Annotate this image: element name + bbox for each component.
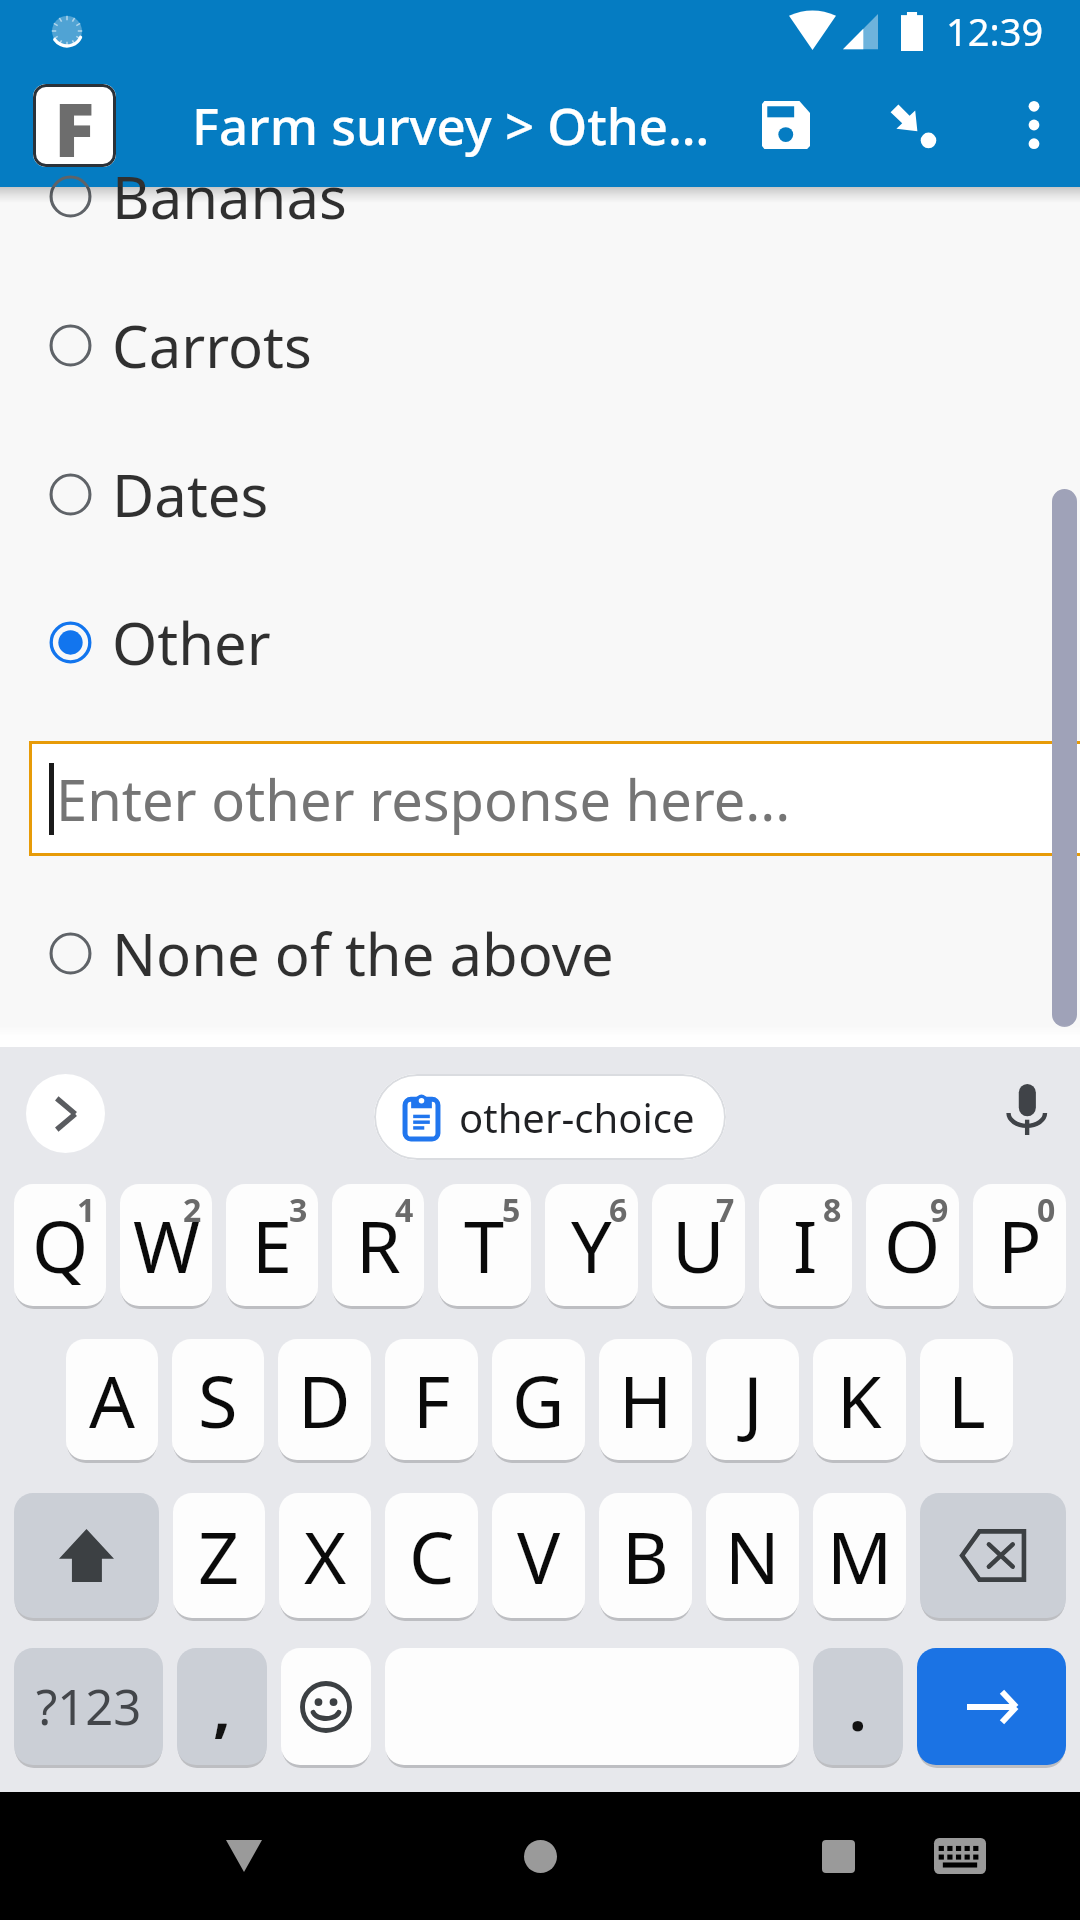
staticText: Carrots <box>112 306 312 385</box>
staticText: 1 <box>77 1188 96 1232</box>
staticText: , <box>213 1665 231 1749</box>
staticText: U <box>672 1196 725 1294</box>
button[interactable]: G <box>492 1339 585 1460</box>
staticText: None of the above <box>112 914 614 993</box>
button[interactable]: B <box>599 1493 692 1618</box>
staticText: H <box>619 1351 673 1449</box>
button[interactable]: Expand toolbar <box>26 1074 105 1153</box>
staticText: Dates <box>112 455 269 534</box>
staticText: O <box>884 1196 941 1294</box>
button[interactable]: Save <box>714 62 858 187</box>
staticText: 2 <box>183 1188 202 1232</box>
staticText: S <box>198 1351 238 1449</box>
button[interactable]: Switch keyboard <box>912 1792 1008 1920</box>
button[interactable]: ?123 <box>14 1648 163 1765</box>
button[interactable]: D <box>278 1339 371 1460</box>
button[interactable]: Z <box>173 1493 265 1618</box>
staticText: 7 <box>716 1188 735 1232</box>
staticText: X <box>304 1507 347 1605</box>
button[interactable]: J <box>706 1339 799 1460</box>
button[interactable]: Recents <box>790 1792 886 1920</box>
staticText: other-choice <box>459 1090 695 1144</box>
button[interactable]: Jump to end <box>858 62 988 187</box>
staticText: B <box>622 1507 669 1605</box>
button[interactable]: S <box>172 1339 264 1460</box>
button[interactable]: Back <box>196 1792 292 1920</box>
staticText: A <box>89 1351 136 1449</box>
staticText: L <box>948 1351 986 1449</box>
staticText: Bananas <box>112 157 347 236</box>
button[interactable]: X <box>279 1493 371 1618</box>
staticText: V <box>517 1507 561 1605</box>
staticText: Z <box>198 1507 240 1605</box>
button[interactable]: V <box>492 1493 585 1618</box>
button[interactable]: . <box>813 1648 903 1765</box>
button[interactable]: A <box>66 1339 158 1460</box>
button[interactable]: H <box>599 1339 692 1460</box>
staticText: W <box>133 1196 200 1294</box>
staticText: E <box>252 1196 293 1294</box>
button[interactable]: C <box>385 1493 478 1618</box>
button[interactable]: W <box>120 1184 212 1306</box>
button[interactable]: I <box>759 1184 852 1306</box>
staticText: Enter other response here... <box>56 761 791 837</box>
button[interactable]: Voice input <box>986 1069 1066 1149</box>
button[interactable]: Backspace <box>920 1493 1066 1618</box>
button[interactable]: Other <box>0 568 1080 716</box>
button[interactable]: L <box>920 1339 1013 1460</box>
button[interactable]: R <box>332 1184 424 1306</box>
button[interactable]: Enter <box>917 1648 1066 1765</box>
button[interactable]: N <box>706 1493 799 1618</box>
button[interactable]: Q <box>14 1184 106 1306</box>
staticText: M <box>827 1507 893 1605</box>
staticText: P <box>998 1196 1042 1294</box>
button[interactable]: U <box>652 1184 745 1306</box>
staticText: ?123 <box>36 1673 142 1740</box>
button[interactable]: Shift <box>14 1493 159 1618</box>
staticText: I <box>793 1196 818 1294</box>
staticText: 8 <box>823 1188 842 1232</box>
button[interactable]: K <box>813 1339 906 1460</box>
staticText: G <box>512 1351 565 1449</box>
staticText: Y <box>571 1196 612 1294</box>
button[interactable]: M <box>813 1493 906 1618</box>
staticText: 5 <box>502 1188 521 1232</box>
staticText: 12:39 <box>946 5 1044 57</box>
staticText: . <box>849 1665 867 1749</box>
staticText: F <box>413 1351 451 1449</box>
button[interactable]: P <box>973 1184 1066 1306</box>
staticText: 6 <box>609 1188 628 1232</box>
staticText: Farm survey > Othe… <box>192 90 712 159</box>
staticText: D <box>298 1351 351 1449</box>
staticText: 9 <box>930 1188 949 1232</box>
button[interactable]: Dates <box>0 420 1080 568</box>
staticText: C <box>409 1507 455 1605</box>
button[interactable]: F <box>385 1339 478 1460</box>
staticText: Q <box>32 1196 89 1294</box>
staticText: N <box>725 1507 780 1605</box>
button[interactable]: More options <box>988 62 1080 187</box>
button[interactable]: E <box>226 1184 318 1306</box>
button[interactable]: O <box>866 1184 959 1306</box>
button[interactable]: T <box>438 1184 531 1306</box>
button[interactable]: App icon <box>33 84 116 167</box>
button[interactable]: Bananas <box>0 122 1080 270</box>
button[interactable]: , <box>177 1648 267 1765</box>
staticText: T <box>464 1196 505 1294</box>
staticText: Other <box>112 603 271 682</box>
staticText: J <box>743 1351 763 1449</box>
staticText: R <box>356 1196 401 1294</box>
staticText: K <box>837 1351 882 1449</box>
staticText: F <box>54 84 95 160</box>
staticText: 0 <box>1037 1188 1056 1232</box>
button[interactable]: Carrots <box>0 271 1080 419</box>
staticText: 4 <box>395 1188 414 1232</box>
button[interactable]: other-choice <box>374 1074 726 1160</box>
button[interactable]: Emoji <box>281 1648 371 1765</box>
button[interactable]: None of the above <box>0 879 1080 1027</box>
button[interactable]: Enter other response here... <box>29 741 1080 856</box>
button[interactable]: Y <box>545 1184 638 1306</box>
button[interactable]: Home <box>492 1792 588 1920</box>
staticText: 3 <box>289 1188 308 1232</box>
